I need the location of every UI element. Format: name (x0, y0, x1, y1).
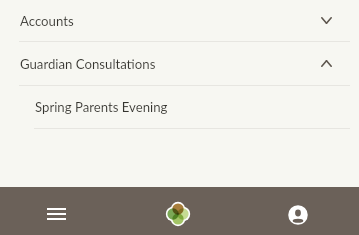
staticText: Guardian Consultations (20, 56, 156, 72)
staticText: Spring Parents Evening (35, 99, 168, 115)
button[interactable]: Home (154, 190, 202, 235)
button[interactable]: Account (274, 191, 322, 235)
staticText: Accounts (20, 13, 74, 29)
button[interactable]: Accounts (0, 0, 359, 42)
button[interactable]: Guardian Consultations (0, 42, 359, 86)
button[interactable]: Spring Parents Evening (0, 86, 359, 129)
button[interactable]: Menu (32, 190, 80, 235)
